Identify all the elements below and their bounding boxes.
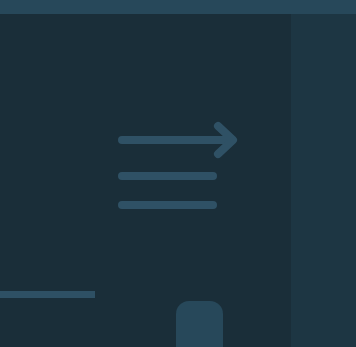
button[interactable]: Send bbox=[114, 116, 242, 216]
button[interactable]: Action bbox=[176, 301, 223, 347]
